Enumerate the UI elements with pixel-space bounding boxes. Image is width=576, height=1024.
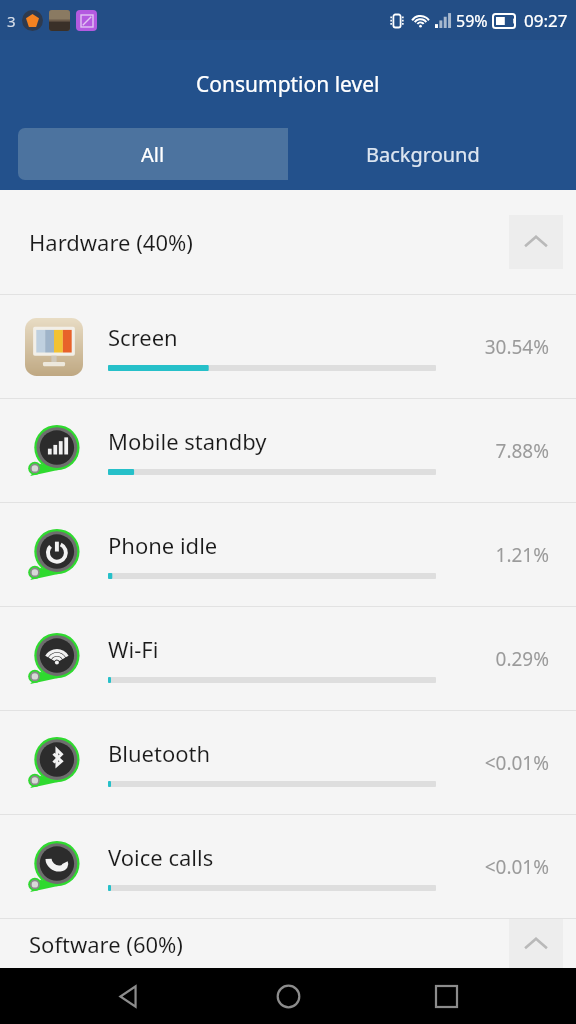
button[interactable]: Wi-Fi [0, 607, 576, 710]
button[interactable]: Collapse section [509, 919, 563, 968]
button[interactable]: Voice calls [0, 815, 576, 918]
button[interactable]: Background [288, 128, 558, 180]
staticText: Screen [108, 322, 178, 352]
button[interactable]: Hardware (40%) [0, 190, 576, 294]
button[interactable]: Back [102, 968, 158, 1024]
staticText: Wi-Fi [108, 634, 159, 664]
button[interactable]: All [18, 128, 288, 180]
button[interactable]: Home [260, 968, 316, 1024]
staticText: <0.01% [484, 854, 549, 880]
staticText: 1.21% [495, 542, 549, 568]
staticText: <0.01% [484, 750, 549, 776]
staticText: 59% [456, 10, 488, 32]
button[interactable]: Recent apps [418, 968, 474, 1024]
staticText: All [141, 141, 165, 168]
staticText: Mobile standby [108, 426, 267, 456]
button[interactable]: Collapse section [509, 215, 563, 269]
staticText: Voice calls [108, 842, 214, 872]
button[interactable]: Bluetooth [0, 711, 576, 814]
staticText: 0.29% [495, 646, 549, 672]
staticText: Consumption level [196, 70, 380, 99]
staticText: Phone idle [108, 530, 218, 560]
staticText: 7.88% [495, 438, 549, 464]
staticText: Background [366, 141, 480, 168]
staticText: Software (60%) [29, 929, 183, 959]
staticText: 09:27 [524, 9, 568, 32]
staticText: 30.54% [484, 334, 549, 360]
button[interactable]: Software (60%) [0, 919, 576, 968]
staticText: Hardware (40%) [29, 227, 193, 257]
button[interactable]: Screen [0, 295, 576, 398]
staticText: Bluetooth [108, 738, 211, 768]
staticText: 3 [7, 11, 16, 31]
button[interactable]: Mobile standby [0, 399, 576, 502]
button[interactable]: Phone idle [0, 503, 576, 606]
